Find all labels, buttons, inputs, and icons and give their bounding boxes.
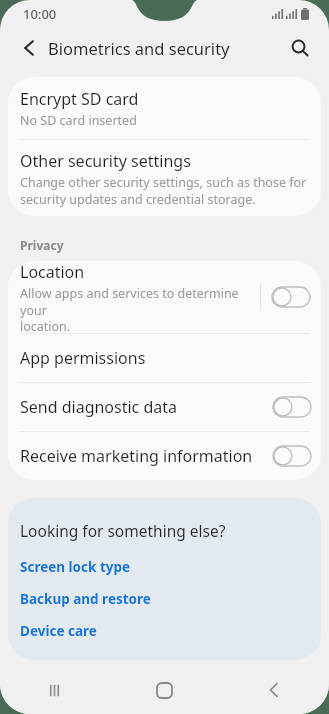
button[interactable]: Screen lock type [20,558,131,576]
staticText: Allow apps and services to determine you… [20,285,260,333]
staticText: Privacy [20,237,64,253]
staticText: Looking for something else? [20,520,226,541]
button[interactable]: Receive marketing information toggle [263,432,321,480]
button[interactable]: Back [219,666,329,714]
button[interactable]: Device care [20,622,97,640]
staticText: Encrypt SD card [20,88,139,110]
staticText: Backup and restore [20,590,151,608]
staticText: Location [20,261,85,283]
staticText: Screen lock type [20,558,131,576]
button[interactable]: Home [109,666,219,714]
button[interactable]: Other security settings [8,140,321,216]
button[interactable]: Send diagnostic data toggle [263,383,321,431]
button[interactable]: Back [13,32,45,64]
button[interactable]: Send diagnostic data [8,383,321,431]
button[interactable]: Recents [0,666,109,714]
staticText: Biometrics and security [48,37,230,59]
button[interactable]: Location toggle [261,261,321,333]
staticText: Device care [20,622,97,640]
button[interactable]: Search [283,31,317,65]
staticText: App permissions [20,347,146,369]
button[interactable]: Encrypt SD card [8,77,321,139]
staticText: Other security settings [20,150,191,172]
button[interactable]: App permissions [8,334,321,382]
staticText: Send diagnostic data [20,396,263,418]
staticText: Receive marketing information [20,445,263,467]
staticText: Change other security settings, such as … [20,174,307,207]
staticText: 10:00 [23,5,57,23]
button[interactable]: Receive marketing information [8,432,321,480]
button[interactable]: Location [8,261,321,333]
staticText: No SD card inserted [20,112,137,129]
button[interactable]: Backup and restore [20,590,151,608]
